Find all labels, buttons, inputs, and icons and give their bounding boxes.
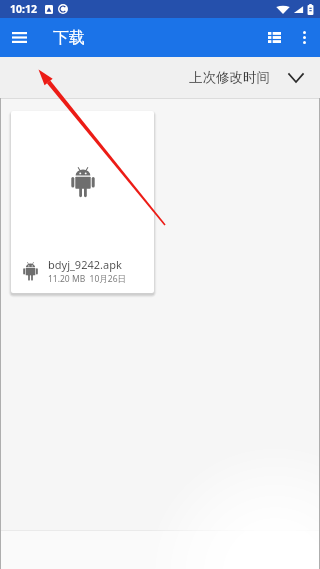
staticText: 下载 (53, 28, 85, 48)
staticText: bdyj_9242.apk (48, 257, 122, 272)
staticText: 10:12 (10, 2, 37, 16)
button[interactable]: bdyj_9242.apk (11, 111, 154, 293)
button[interactable]: Toggle list view (260, 18, 289, 57)
button[interactable]: More options (289, 18, 320, 57)
staticText: 上次修改时间 (189, 69, 270, 86)
button[interactable]: 上次修改时间 (183, 63, 309, 92)
button[interactable]: Open navigation drawer (0, 18, 39, 57)
staticText: 11.20 MB 10月26日 (48, 273, 127, 285)
